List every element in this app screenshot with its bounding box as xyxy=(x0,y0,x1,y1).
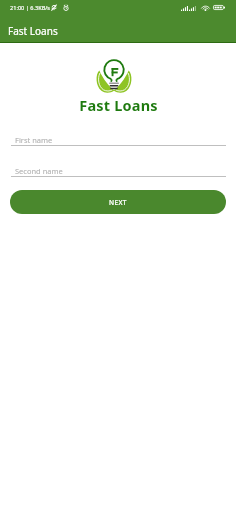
button[interactable]: First name xyxy=(11,135,226,146)
staticText: First name xyxy=(15,135,53,145)
button[interactable]: NEXT xyxy=(10,190,226,214)
staticText: NEXT xyxy=(109,198,127,207)
staticText: 21:00 | 6.3KB/s xyxy=(10,4,51,12)
staticText: Second name xyxy=(15,166,63,176)
staticText: Fast Loans xyxy=(8,24,58,38)
button[interactable]: Second name xyxy=(11,166,226,177)
staticText: Fast Loans xyxy=(79,95,158,115)
